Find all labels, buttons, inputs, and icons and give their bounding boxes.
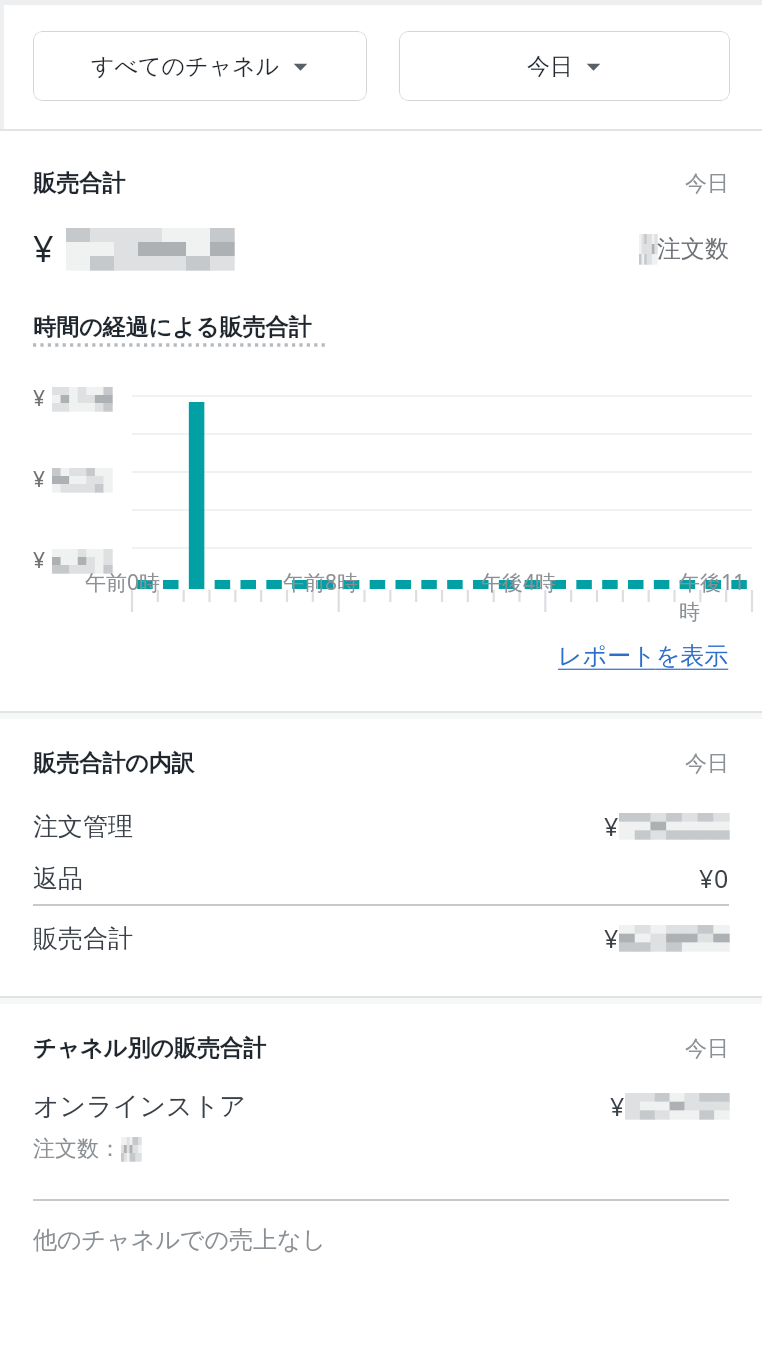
staticText: 他のチャネルでの売上なし: [33, 1225, 327, 1255]
button[interactable]: すべてのチャネル: [33, 31, 367, 101]
button[interactable]: レポートを表示: [558, 641, 729, 671]
staticText: 返品: [33, 863, 83, 894]
staticText: 今日: [685, 170, 729, 198]
staticText: 時間の経過による販売合計: [33, 313, 312, 342]
staticText: ¥: [33, 465, 46, 494]
staticText: レポートを表示: [558, 641, 729, 671]
staticText: 注文管理: [33, 811, 133, 842]
staticText: ¥: [33, 224, 54, 273]
staticText: ¥: [610, 1089, 625, 1123]
staticText: オンラインストア: [33, 1090, 246, 1123]
staticText: 注文数：: [33, 1135, 121, 1163]
staticText: ¥: [699, 861, 714, 895]
staticText: 今日: [527, 52, 573, 81]
staticText: ¥: [33, 546, 46, 575]
staticText: 今日: [685, 750, 729, 778]
staticText: 午前0時: [85, 568, 161, 597]
staticText: すべてのチャネル: [91, 52, 280, 81]
staticText: チャネル別の販売合計: [33, 1034, 266, 1063]
staticText: 販売合計: [33, 169, 125, 198]
staticText: ¥: [33, 384, 46, 413]
staticText: ¥: [604, 809, 619, 843]
staticText: 今日: [685, 1035, 729, 1063]
staticText: 午後11時: [679, 568, 762, 625]
button[interactable]: 今日: [399, 31, 730, 101]
staticText: 0: [714, 861, 729, 895]
staticText: 注文数: [657, 234, 729, 264]
staticText: 午前8時: [283, 568, 359, 597]
staticText: 販売合計の内訳: [33, 749, 195, 778]
staticText: 販売合計: [33, 923, 133, 954]
button[interactable]: オンラインストア: [33, 1089, 729, 1123]
staticText: 午後4時: [481, 568, 557, 597]
staticText: ¥: [604, 921, 619, 955]
